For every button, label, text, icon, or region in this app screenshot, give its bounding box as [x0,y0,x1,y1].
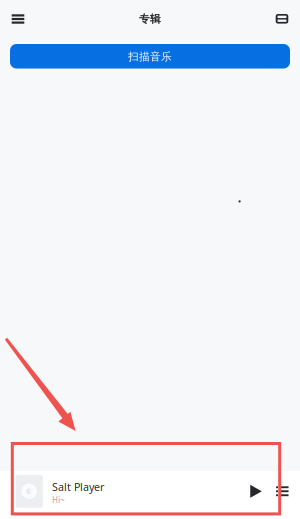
button[interactable]: 扫描音乐 [10,44,290,68]
button[interactable]: Menu [4,5,32,33]
button[interactable]: Playing queue [270,478,294,504]
staticText: Salt Player [52,480,104,494]
staticText: Hi~ [52,494,65,505]
staticText: 专辑 [139,12,161,25]
button[interactable]: Change layout [268,5,296,33]
staticText: 扫描音乐 [128,50,172,63]
button[interactable]: Play [244,478,268,504]
button[interactable]: Now playing artwork [15,475,43,508]
